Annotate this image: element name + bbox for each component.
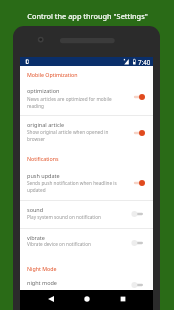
button[interactable] xyxy=(20,84,153,114)
staticText: 7:40 xyxy=(138,58,151,66)
staticText: updated xyxy=(27,187,46,193)
staticText: Show original article when opened in xyxy=(27,129,109,135)
button[interactable] xyxy=(20,203,153,224)
button[interactable]: Home xyxy=(79,291,95,307)
button[interactable]: Recent apps xyxy=(115,291,131,307)
staticText: Night Mode xyxy=(27,265,57,272)
staticText: optimization xyxy=(27,87,60,94)
button[interactable]: Switch off xyxy=(129,208,147,220)
button[interactable]: Switch on xyxy=(129,91,147,103)
staticText: reading xyxy=(27,103,44,109)
button[interactable]: Switch off xyxy=(129,237,147,249)
button[interactable]: Switch off xyxy=(129,279,147,291)
button[interactable]: Switch on xyxy=(129,127,147,139)
staticText: Control the app through "Settings" xyxy=(27,11,148,21)
staticText: Vibrate device on notification xyxy=(27,241,91,247)
staticText: sound xyxy=(27,206,44,213)
button[interactable]: Back xyxy=(43,291,59,307)
staticText: push update xyxy=(27,172,60,179)
button[interactable] xyxy=(20,276,153,291)
button[interactable]: Switch on xyxy=(129,177,147,189)
staticText: Mobile Optimization xyxy=(27,71,78,78)
button[interactable] xyxy=(20,231,153,252)
staticText: Sends push notification when headline is xyxy=(27,180,117,186)
staticText: original article xyxy=(27,121,65,128)
staticText: browser xyxy=(27,136,45,142)
button[interactable] xyxy=(20,118,153,148)
staticText: vibrate xyxy=(27,234,45,241)
staticText: night mode xyxy=(27,279,57,286)
staticText: Play system sound on notification xyxy=(27,214,102,220)
button[interactable] xyxy=(20,169,153,198)
staticText: News articles are optimized for mobile xyxy=(27,96,112,102)
staticText: Notifications xyxy=(27,155,59,162)
